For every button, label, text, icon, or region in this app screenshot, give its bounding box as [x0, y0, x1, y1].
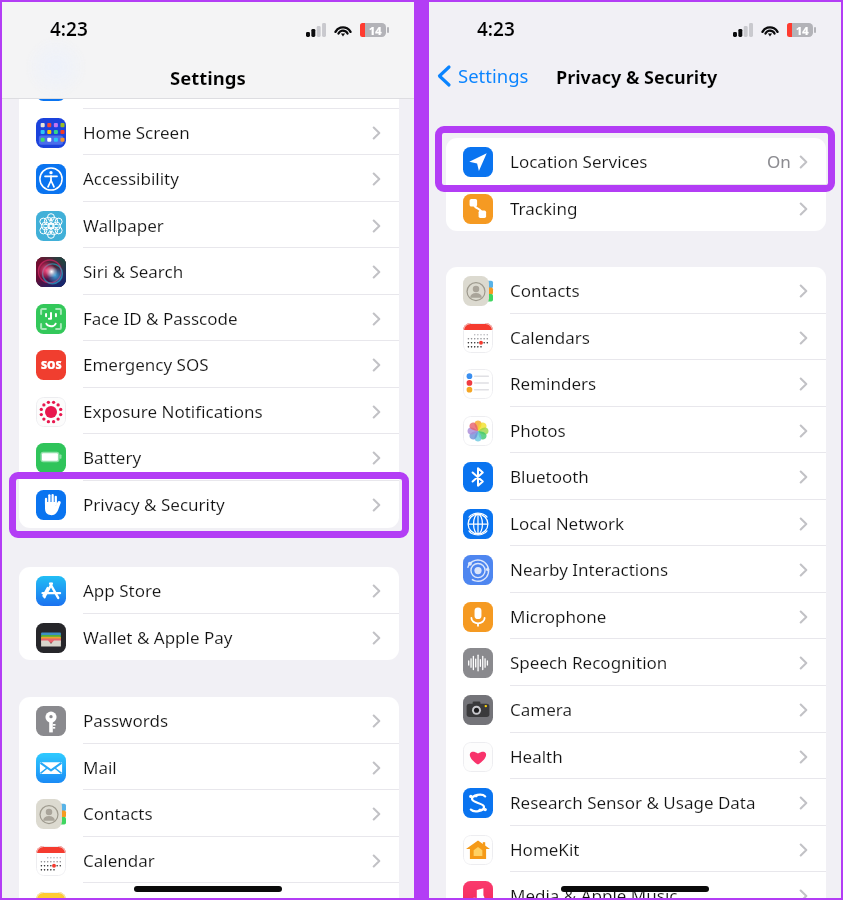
staticText: Contacts: [510, 279, 580, 302]
staticText: Tracking: [510, 197, 578, 220]
button[interactable]: Local Network: [446, 500, 826, 547]
button[interactable]: Media & Apple Music: [446, 872, 826, 898]
button[interactable]: Tracking: [446, 185, 826, 231]
staticText: Camera: [510, 698, 572, 721]
staticText: Speech Recognition: [510, 651, 668, 674]
staticText: 4:23: [477, 16, 515, 42]
staticText: Display & Brightness: [83, 74, 249, 97]
staticText: Calendar: [83, 849, 155, 872]
staticText: SOS: [41, 358, 62, 372]
staticText: Media & Apple Music: [510, 884, 678, 898]
button[interactable]: Wallpaper: [19, 202, 399, 249]
button[interactable]: Back to Settings: [438, 63, 529, 88]
button[interactable]: Camera: [446, 686, 826, 733]
button[interactable]: SOS: [19, 341, 399, 388]
staticText: Wallpaper: [83, 214, 164, 237]
staticText: Nearby Interactions: [510, 558, 669, 581]
staticText: HomeKit: [510, 838, 580, 861]
staticText: Siri & Search: [83, 260, 184, 283]
button[interactable]: HomeKit: [446, 826, 826, 873]
button[interactable]: Display & Brightness: [19, 62, 399, 109]
button[interactable]: Contacts: [19, 790, 399, 837]
button[interactable]: Research Sensor & Usage Data: [446, 779, 826, 826]
staticText: Bluetooth: [510, 465, 589, 488]
button[interactable]: Siri & Search: [19, 248, 399, 295]
button[interactable]: App Store: [19, 567, 399, 614]
button[interactable]: Calendars: [446, 314, 826, 361]
button[interactable]: Wallet & Apple Pay: [19, 614, 399, 660]
button[interactable]: Battery: [19, 434, 399, 481]
button[interactable]: Passwords: [19, 697, 399, 744]
staticText: Privacy & Security: [556, 65, 718, 90]
button[interactable]: Speech Recognition: [446, 639, 826, 686]
button[interactable]: Calendar: [19, 837, 399, 884]
staticText: Calendars: [510, 326, 590, 349]
staticText: Battery: [83, 446, 142, 469]
staticText: On: [767, 150, 791, 173]
button[interactable]: Exposure Notifications: [19, 388, 399, 435]
button[interactable]: Location Services: [446, 138, 826, 185]
staticText: 14: [369, 23, 382, 37]
staticText: Privacy & Security: [83, 493, 225, 516]
staticText: 14: [796, 23, 809, 37]
staticText: Face ID & Passcode: [83, 307, 238, 330]
button[interactable]: Home Screen: [19, 109, 399, 156]
button[interactable]: Mail: [19, 744, 399, 791]
staticText: Reminders: [510, 372, 597, 395]
button[interactable]: Accessibility: [19, 155, 399, 202]
staticText: Exposure Notifications: [83, 400, 263, 423]
button[interactable]: Bluetooth: [446, 453, 826, 500]
staticText: Local Network: [510, 512, 625, 535]
staticText: Home Screen: [83, 121, 190, 144]
button[interactable]: Photos: [446, 407, 826, 454]
button[interactable]: Privacy & Security: [19, 481, 399, 528]
staticText: Accessibility: [83, 167, 179, 190]
button[interactable]: Health: [446, 733, 826, 780]
button[interactable]: Microphone: [446, 593, 826, 640]
staticText: Passwords: [83, 709, 169, 732]
staticText: Settings: [458, 63, 529, 88]
button[interactable]: Contacts: [446, 267, 826, 314]
staticText: Settings: [170, 65, 246, 90]
staticText: Microphone: [510, 605, 607, 628]
staticText: App Store: [83, 579, 162, 602]
button[interactable]: Notes: [19, 883, 399, 898]
staticText: Emergency SOS: [83, 353, 209, 376]
staticText: Wallet & Apple Pay: [83, 626, 233, 649]
button[interactable]: Face ID & Passcode: [19, 295, 399, 342]
button[interactable]: Nearby Interactions: [446, 546, 826, 593]
staticText: Mail: [83, 756, 117, 779]
button[interactable]: Reminders: [446, 360, 826, 407]
staticText: Research Sensor & Usage Data: [510, 791, 756, 814]
staticText: Health: [510, 745, 563, 768]
staticText: 4:23: [50, 16, 88, 42]
staticText: Location Services: [510, 150, 648, 173]
staticText: Photos: [510, 419, 566, 442]
staticText: Contacts: [83, 802, 153, 825]
